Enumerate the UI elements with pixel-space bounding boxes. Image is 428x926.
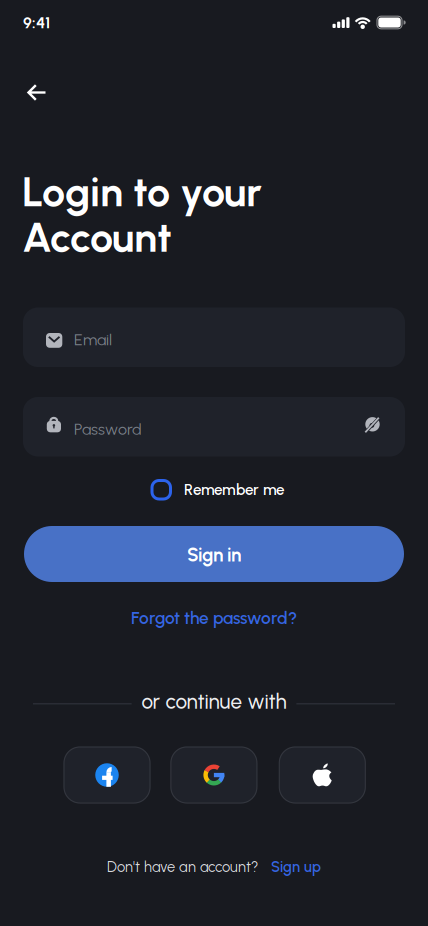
staticText: Don't have an account? — [107, 858, 258, 876]
button[interactable]: Sign up — [271, 858, 321, 876]
button[interactable] — [170, 746, 257, 803]
staticText: Sign in — [187, 544, 241, 566]
staticText: Remember me — [184, 481, 285, 499]
staticText: 9:41 — [23, 13, 50, 32]
staticText: Forgot the password? — [131, 607, 297, 628]
staticText: Account — [22, 212, 172, 262]
button[interactable]: Password — [23, 397, 405, 456]
button[interactable] — [63, 746, 150, 803]
button[interactable] — [27, 83, 47, 102]
staticText: Password — [74, 419, 142, 439]
button[interactable]: Forgot the password? — [0, 607, 428, 628]
staticText: or continue with — [141, 689, 286, 714]
staticText: Email — [74, 330, 112, 349]
staticText: Login to your — [22, 167, 262, 217]
button[interactable]: Email — [23, 307, 405, 367]
button[interactable] — [279, 746, 366, 803]
button[interactable]: Sign in — [24, 526, 404, 582]
staticText: Sign up — [271, 858, 321, 876]
button[interactable]: Remember me — [150, 479, 285, 500]
